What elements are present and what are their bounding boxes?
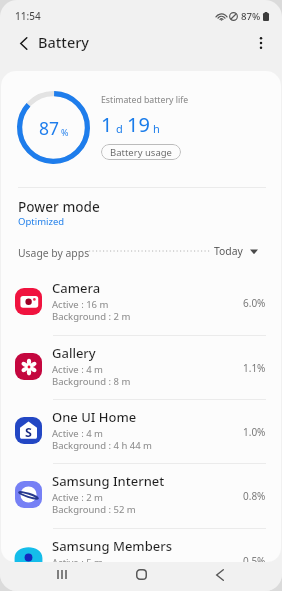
- button[interactable]: Back: [200, 562, 240, 587]
- staticText: 1.0%: [243, 425, 266, 439]
- staticText: Optimized: [18, 215, 65, 228]
- staticText: %: [61, 126, 69, 138]
- staticText: 19: [127, 111, 150, 138]
- staticText: Samsung Members: [52, 537, 173, 555]
- staticText: d: [116, 121, 123, 136]
- staticText: 87%: [241, 10, 261, 23]
- staticText: h: [153, 121, 160, 136]
- button[interactable]: Home: [121, 562, 161, 587]
- staticText: Active : 5 m: [52, 556, 103, 562]
- button[interactable]: Recent apps: [42, 562, 82, 587]
- staticText: S: [25, 424, 32, 441]
- staticText: 0.8%: [243, 489, 266, 503]
- button[interactable]: Samsung Internet: [1, 463, 281, 527]
- button[interactable]: Samsung Members: [1, 528, 281, 562]
- staticText: 1: [101, 111, 113, 138]
- staticText: Active : 2 m: [52, 491, 103, 504]
- staticText: Estimated battery life: [101, 94, 189, 106]
- staticText: Background : 2 m: [52, 310, 131, 323]
- staticText: Battery usage: [110, 146, 172, 159]
- staticText: Active : 4 m: [52, 427, 103, 440]
- button[interactable]: Battery usage: [101, 144, 181, 160]
- staticText: Background : 8 m: [52, 375, 131, 388]
- staticText: 11:54: [15, 9, 41, 23]
- button[interactable]: Camera: [1, 270, 281, 334]
- staticText: Samsung Internet: [52, 472, 165, 490]
- staticText: Battery: [38, 32, 89, 52]
- staticText: 87: [39, 116, 60, 140]
- staticText: Usage by apps: [18, 246, 90, 260]
- staticText: One UI Home: [52, 408, 137, 426]
- staticText: Gallery: [52, 344, 96, 362]
- staticText: 1.1%: [243, 361, 266, 375]
- staticText: 0.5%: [243, 554, 266, 562]
- staticText: Power mode: [18, 197, 100, 216]
- button[interactable]: S: [1, 399, 281, 463]
- staticText: Today: [214, 244, 243, 258]
- button[interactable]: Power mode: [1, 188, 281, 236]
- staticText: Active : 16 m: [52, 298, 109, 311]
- button[interactable]: Today: [214, 243, 258, 259]
- button[interactable]: More options: [245, 28, 276, 58]
- staticText: 6.0%: [243, 296, 266, 310]
- staticText: Camera: [52, 279, 101, 297]
- staticText: Background : 52 m: [52, 503, 136, 516]
- staticText: Background : 4 h 44 m: [52, 439, 152, 452]
- button[interactable]: Gallery: [1, 335, 281, 399]
- staticText: Active : 4 m: [52, 363, 103, 376]
- button[interactable]: Navigate up: [8, 28, 39, 58]
